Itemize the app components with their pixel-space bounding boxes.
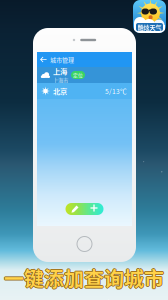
button[interactable]: 编辑 bbox=[65, 203, 84, 215]
staticText: 5/13℃ bbox=[105, 86, 127, 96]
button[interactable]: 酷炫天气 App bbox=[133, 0, 166, 33]
button[interactable]: 北京 bbox=[37, 83, 132, 99]
staticText: 一键添加查询城市 bbox=[4, 263, 164, 292]
staticText: 城市管理 bbox=[50, 55, 74, 64]
button[interactable]: 返回 bbox=[37, 52, 50, 67]
staticText: 一键添加查询城市 bbox=[4, 264, 164, 293]
staticText: 一键添加查询城市 bbox=[3, 263, 163, 292]
staticText: 上海 bbox=[53, 66, 67, 76]
staticText: 北京 bbox=[53, 86, 67, 96]
staticText: 一键添加查询城市 bbox=[4, 263, 164, 292]
staticText: 上海市 bbox=[53, 76, 68, 84]
button[interactable]: 添加城市 bbox=[84, 203, 103, 215]
staticText: 一键添加查询城市 bbox=[5, 263, 165, 292]
button[interactable]: 上海 bbox=[37, 67, 132, 83]
staticText: 定位 bbox=[73, 71, 83, 78]
staticText: 酷炫天气 bbox=[137, 23, 161, 31]
